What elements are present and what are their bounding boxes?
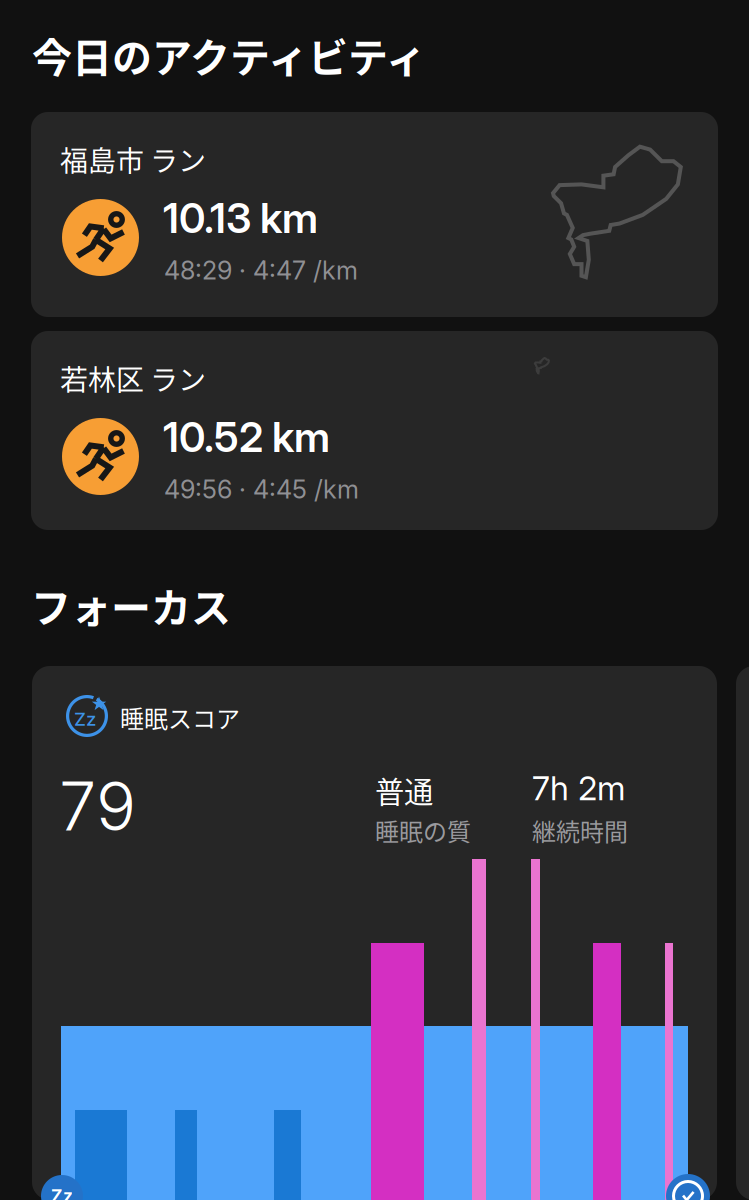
- staticText: Zz: [74, 708, 96, 730]
- staticText: 若林区 ラン: [60, 358, 206, 398]
- staticText: 福島市 ラン: [60, 139, 206, 179]
- staticText: フォーカス: [31, 576, 231, 634]
- staticText: 10.13 km: [163, 193, 318, 243]
- staticText: Zz: [51, 1185, 73, 1200]
- staticText: 今日のアクティビティ: [32, 26, 426, 84]
- button[interactable]: 若林区 ラン: [31, 331, 718, 530]
- staticText: 継続時間: [532, 813, 628, 848]
- staticText: 睡眠の質: [375, 813, 471, 848]
- staticText: 10.52 km: [163, 412, 330, 462]
- staticText: 49:56 · 4:45 /km: [164, 474, 359, 505]
- staticText: 普通: [375, 769, 433, 811]
- button[interactable]: 福島市 ラン: [31, 112, 718, 317]
- staticText: 睡眠スコア: [120, 700, 240, 735]
- staticText: 7h 2m: [532, 768, 625, 808]
- staticText: 48:29 · 4:47 /km: [164, 255, 358, 286]
- staticText: 79: [59, 766, 136, 847]
